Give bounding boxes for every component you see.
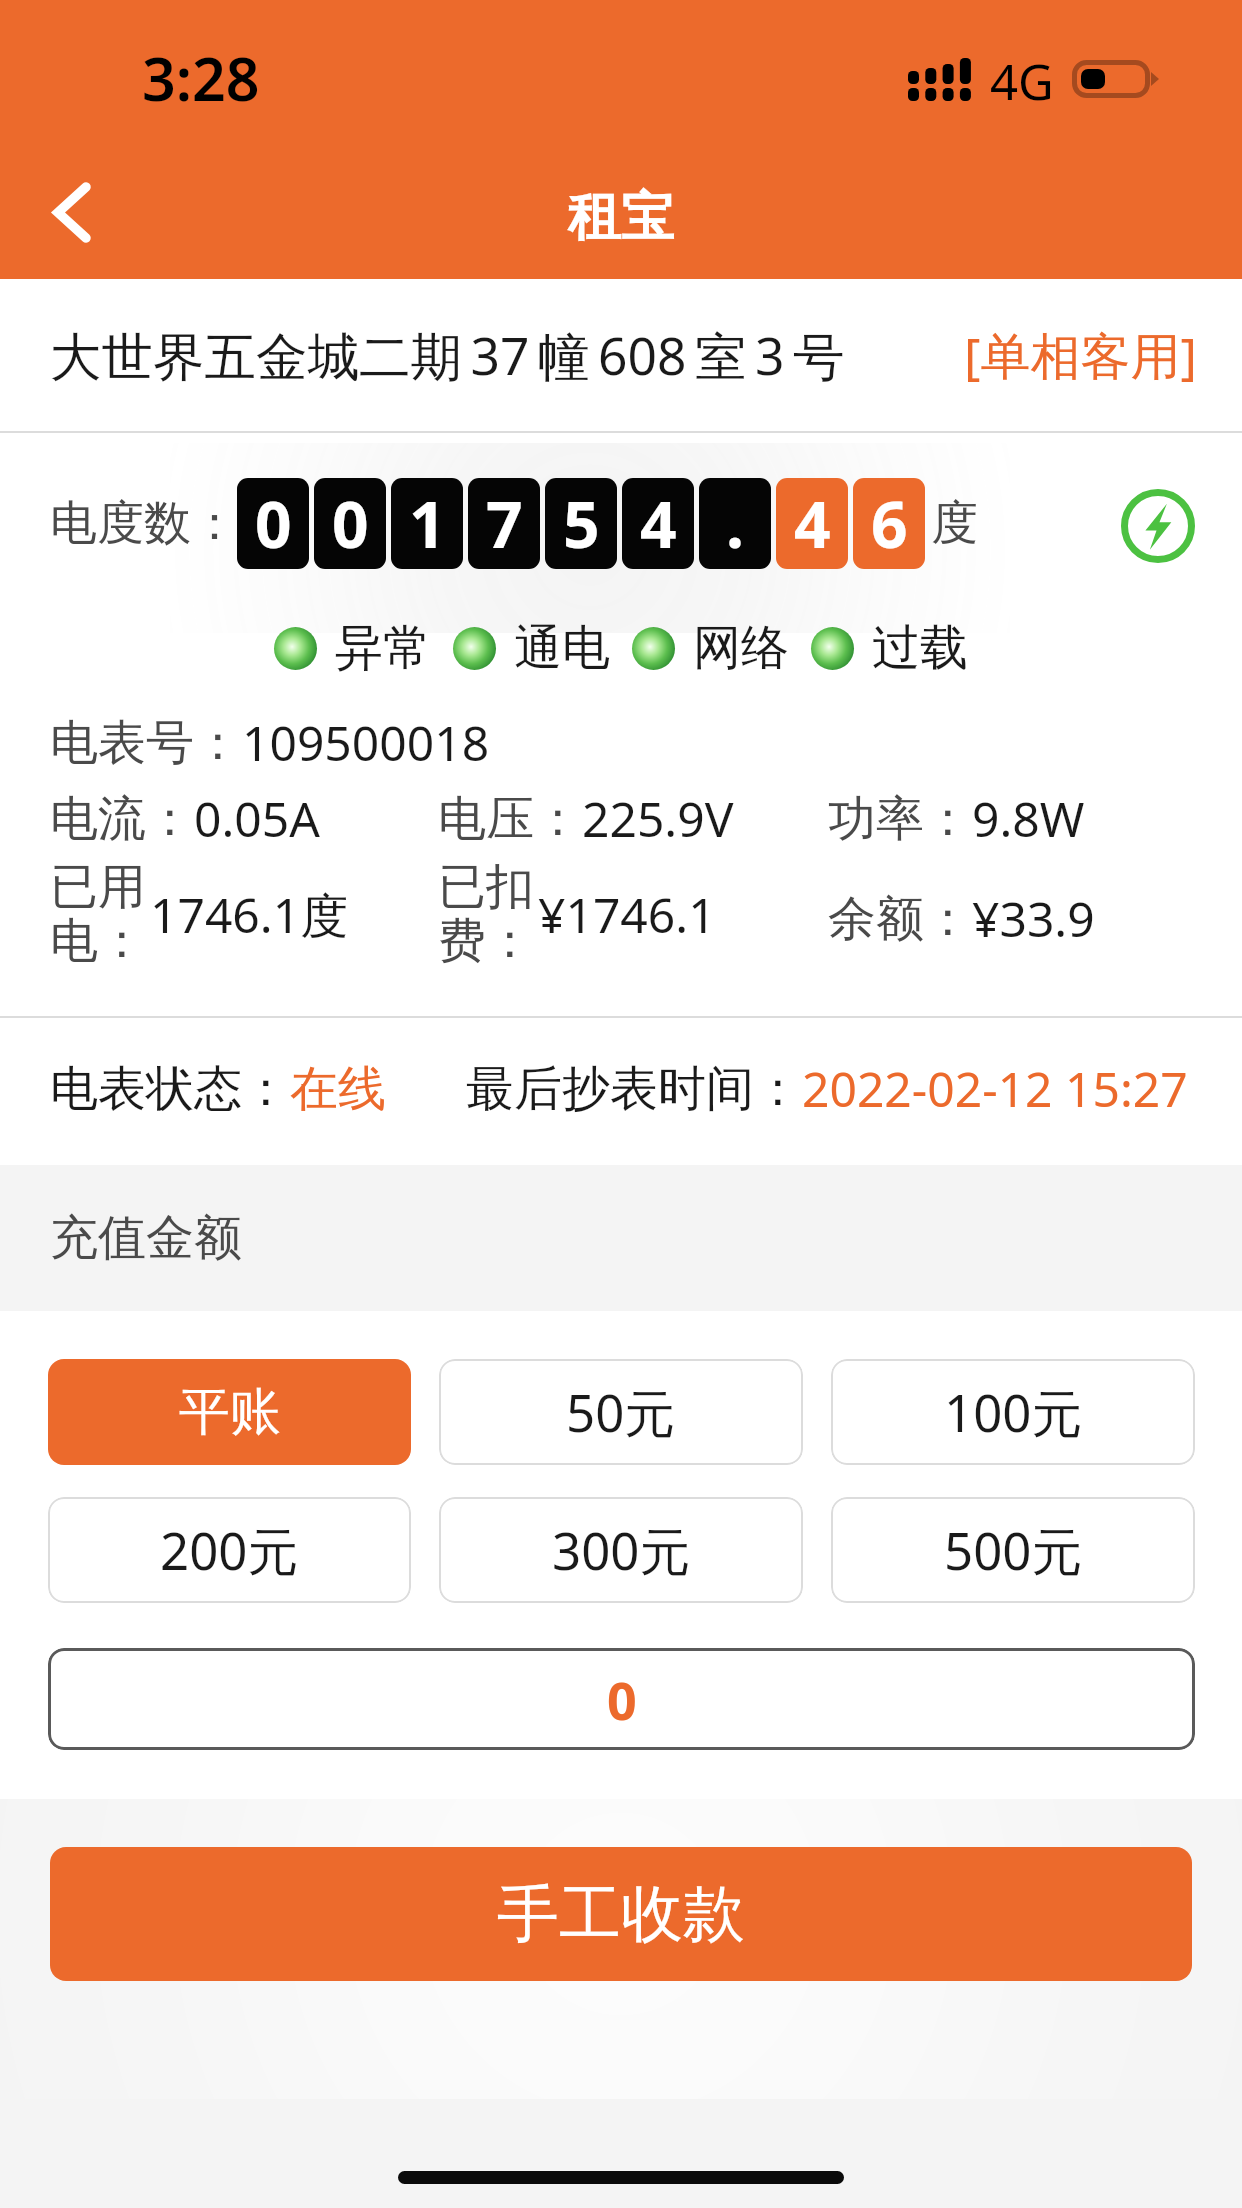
button[interactable]: Back <box>16 157 127 268</box>
staticText: 7 <box>486 480 523 567</box>
button[interactable]: 300元 <box>439 1497 803 1603</box>
staticText: 电表号： <box>50 713 242 773</box>
staticText: 500元 <box>944 1515 1083 1585</box>
staticText: 100元 <box>944 1377 1083 1447</box>
staticText: 电流： <box>50 789 194 849</box>
button[interactable]: 手工收款 <box>50 1847 1192 1981</box>
staticText: 4 <box>794 480 831 567</box>
staticText: 6 <box>871 480 908 567</box>
staticText: 300元 <box>552 1515 691 1585</box>
staticText: 电度数： <box>50 494 238 553</box>
button[interactable]: 50元 <box>439 1359 803 1465</box>
staticText: 已扣费： <box>438 857 538 972</box>
staticText: 50元 <box>566 1377 676 1447</box>
staticText: 度 <box>931 494 978 553</box>
staticText: 0.05A <box>194 786 320 851</box>
staticText: 租宝 <box>568 184 674 251</box>
staticText: 平账 <box>179 1380 281 1444</box>
staticText: 3:28 <box>142 38 260 118</box>
staticText: 4 <box>640 480 677 567</box>
staticText: 5 <box>563 480 600 567</box>
staticText: 手工收款 <box>497 1875 745 1953</box>
staticText: . <box>726 480 744 567</box>
staticText: 网络 <box>693 618 789 678</box>
staticText: 充值金额 <box>50 1208 242 1268</box>
staticText: 电压： <box>438 789 582 849</box>
button[interactable]: 500元 <box>831 1497 1195 1603</box>
staticText: 0 <box>332 480 369 567</box>
button[interactable]: Power on/off <box>1121 489 1195 563</box>
staticText: 大世界五金城二期 37 幢 608 室 3 号 <box>50 320 845 390</box>
staticText: 功率： <box>828 789 972 849</box>
staticText: 1746.1度 <box>150 882 349 948</box>
staticText: 最后抄表时间： <box>466 1059 802 1119</box>
staticText: 4G <box>990 48 1054 115</box>
staticText: ¥1746.1 <box>538 882 716 947</box>
staticText: 通电 <box>514 618 610 678</box>
staticText: [单相客用] <box>964 321 1197 389</box>
staticText: 225.9V <box>582 786 734 851</box>
staticText: 过载 <box>872 618 968 678</box>
button[interactable]: 平账 <box>48 1359 411 1465</box>
staticText: 在线 <box>290 1059 386 1119</box>
staticText: 109500018 <box>242 710 490 775</box>
staticText: 异常 <box>335 618 431 678</box>
staticText: 电表状态： <box>50 1059 290 1119</box>
staticText: 0 <box>255 480 292 567</box>
staticText: 1 <box>409 480 446 567</box>
staticText: 0 <box>607 1664 637 1735</box>
staticText: 已用电： <box>50 857 150 972</box>
button[interactable]: 0 <box>48 1648 1195 1750</box>
button[interactable]: 大世界五金城二期 37 幢 608 室 3 号 <box>0 279 1242 431</box>
staticText: ¥33.9 <box>972 886 1095 951</box>
button[interactable]: 200元 <box>48 1497 411 1603</box>
button[interactable]: 100元 <box>831 1359 1195 1465</box>
staticText: 9.8W <box>972 786 1085 851</box>
staticText: 2022-02-12 15:27 <box>802 1056 1188 1121</box>
staticText: 200元 <box>160 1515 299 1585</box>
staticText: 余额： <box>828 889 972 949</box>
